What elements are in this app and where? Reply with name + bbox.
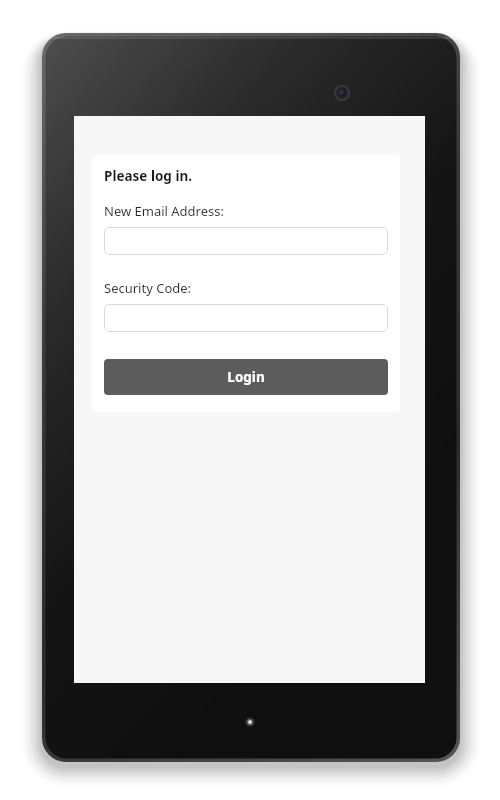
button[interactable]: Login <box>104 359 388 395</box>
staticText: Please log in. <box>104 167 193 185</box>
button[interactable]: Text input field <box>104 227 388 255</box>
staticText: Login <box>227 368 265 386</box>
staticText: New Email Address: <box>104 202 224 220</box>
button[interactable]: Text input field <box>104 304 388 332</box>
staticText: Security Code: <box>104 279 192 297</box>
